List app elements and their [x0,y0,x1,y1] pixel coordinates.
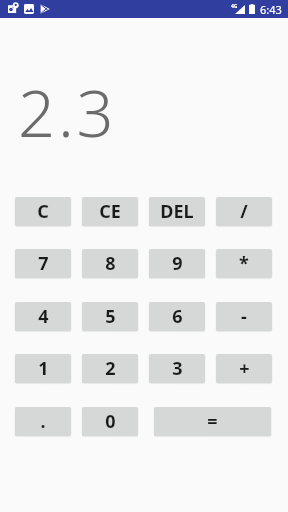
button[interactable]: 3 [149,354,205,383]
staticText: 8 [105,251,116,276]
staticText: - [241,304,247,329]
staticText: 3 [172,356,183,381]
button[interactable]: = [154,407,271,436]
staticText: 6 [172,304,183,329]
other: Signal strength [235,5,245,14]
other: Play Store notification [40,4,50,14]
button[interactable]: C [15,197,71,226]
other: Photos notification [24,4,34,14]
other: Battery [249,4,255,14]
button[interactable]: DEL [149,197,205,226]
button[interactable]: 6 [149,302,205,331]
staticText: 7 [38,251,49,276]
staticText: DEL [160,199,194,224]
staticText: * [239,251,249,276]
staticText: = [207,409,218,434]
staticText: 9 [172,251,183,276]
staticText: + [239,356,250,381]
button[interactable]: . [15,407,71,436]
staticText: 4G [231,3,238,10]
staticText: CE [99,199,121,224]
staticText: 0 [105,409,116,434]
staticText: C [37,199,49,224]
button[interactable]: 9 [149,249,205,278]
button[interactable]: 1 [15,354,71,383]
button[interactable]: / [216,197,272,226]
button[interactable]: 4 [15,302,71,331]
button[interactable]: 5 [82,302,138,331]
button[interactable]: * [216,249,272,278]
staticText: / [240,199,248,224]
staticText: 1 [38,356,49,381]
staticText: 2.3 [18,68,117,157]
other: Maps notification [8,3,19,13]
staticText: 2 [105,356,116,381]
button[interactable]: + [216,354,272,383]
staticText: 5 [105,304,116,329]
staticText: 6:43 [260,2,282,17]
button[interactable]: 0 [82,407,138,436]
staticText: . [40,409,46,434]
button[interactable]: 7 [15,249,71,278]
button[interactable]: CE [82,197,138,226]
button[interactable]: 8 [82,249,138,278]
button[interactable]: - [216,302,272,331]
staticText: 4 [38,304,49,329]
button[interactable]: 2 [82,354,138,383]
